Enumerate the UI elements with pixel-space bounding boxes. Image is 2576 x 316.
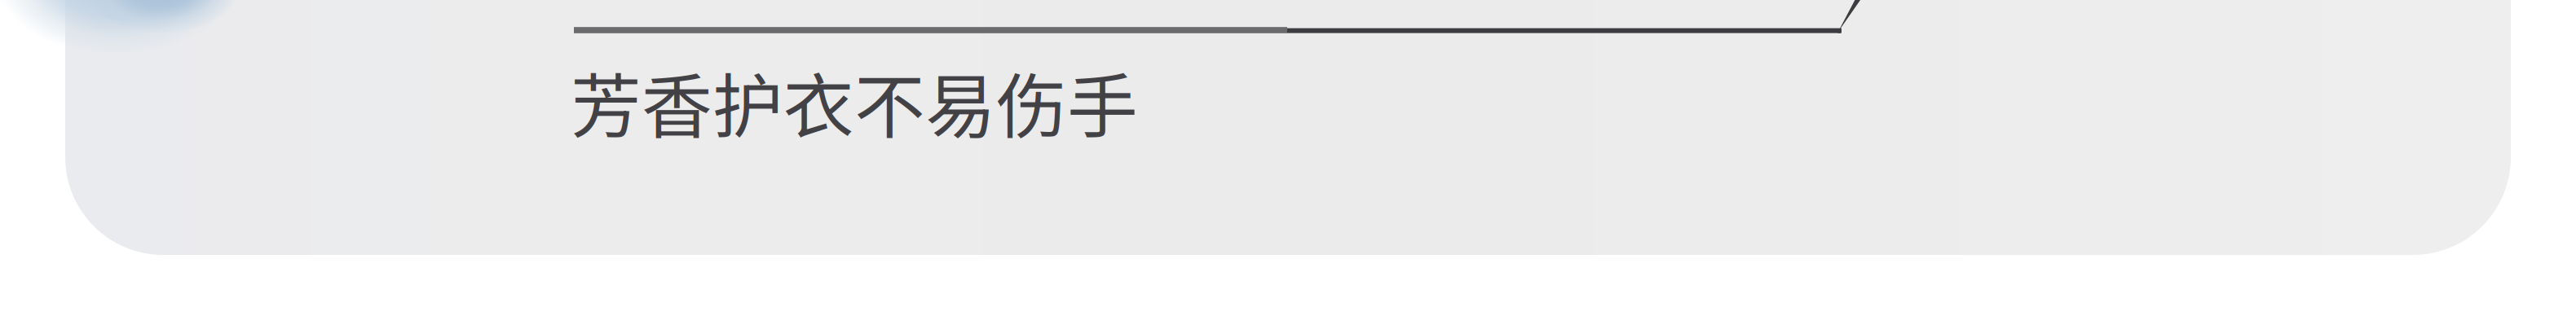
staticText: 芳香护衣不易伤手: [571, 50, 1138, 153]
